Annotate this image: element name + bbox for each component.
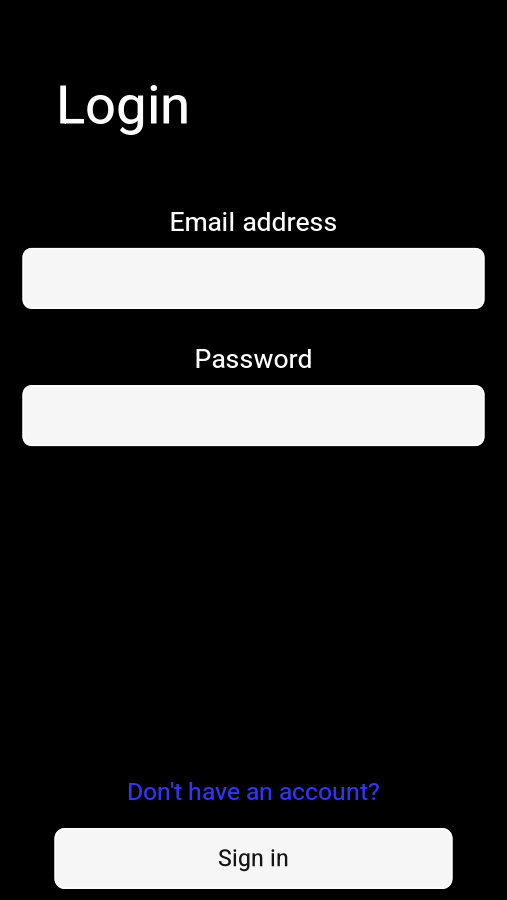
button[interactable]: Don't have an account?: [0, 777, 507, 806]
staticText: Password: [194, 343, 312, 375]
staticText: Email address: [169, 206, 337, 237]
staticText: Login: [56, 73, 190, 137]
button[interactable]: Sign in: [54, 828, 452, 889]
button[interactable]: Email address: [22, 248, 484, 309]
staticText: Sign in: [218, 845, 289, 872]
button[interactable]: Password: [22, 385, 484, 446]
staticText: Don't have an account?: [127, 777, 380, 806]
